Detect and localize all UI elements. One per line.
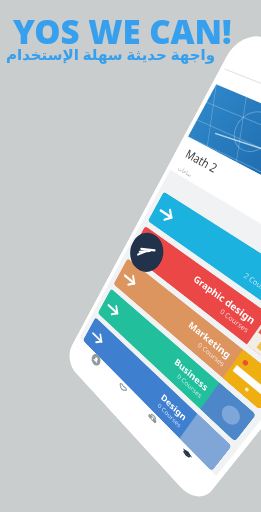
staticText: 0 Courses [175,372,204,401]
button[interactable]: Graphic design [130,226,261,376]
button[interactable]: YOS [148,191,261,339]
staticText: 2 Courses [242,271,261,300]
button[interactable]: Filter [124,225,170,279]
staticText: 0 Courses [196,341,227,370]
staticText: 0 Courses [156,402,183,430]
button[interactable]: المفضلة [113,376,132,398]
staticText: YOS [259,266,261,291]
button[interactable]: مشترياتي [141,405,164,431]
button[interactable]: Marketing [113,258,261,410]
staticText: 0 Courses [218,307,251,336]
button[interactable]: Design [83,317,232,471]
staticText: Graphic design [191,272,259,328]
staticText: YOS WE CAN! [13,9,232,54]
staticText: واجهة حديثة سهلة الإستخدام [6,44,215,64]
staticText: Design [159,391,190,424]
button[interactable]: الدورات [175,440,199,466]
button[interactable]: الحساب [87,349,104,370]
button[interactable]: Business [98,288,256,442]
staticText: Business [172,355,211,394]
staticText: Marketing [186,318,234,362]
staticText: ساعات [177,164,193,178]
staticText: Math 2 [183,145,221,176]
